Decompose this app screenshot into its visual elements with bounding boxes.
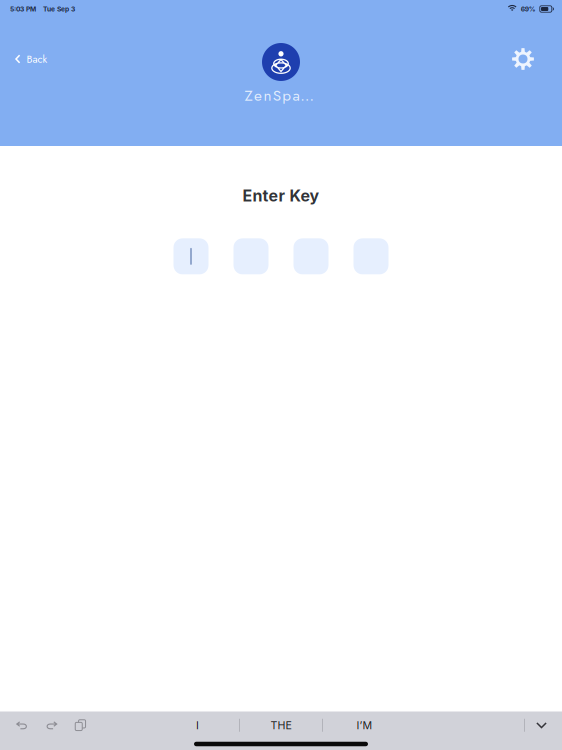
button[interactable]: I: [156, 714, 239, 737]
button[interactable]: Settings: [496, 39, 559, 79]
button[interactable]: Paste: [66, 714, 94, 737]
staticText: THE: [270, 719, 291, 732]
staticText: Enter Key: [242, 186, 319, 205]
button[interactable]: Back: [3, 42, 60, 76]
button[interactable]: Redo: [36, 715, 66, 735]
staticText: 69%: [521, 5, 536, 13]
staticText: 5:03 PM: [10, 5, 36, 13]
button[interactable]: I’M: [323, 714, 406, 737]
staticText: Back: [27, 51, 48, 67]
staticText: Tue Sep 3: [43, 5, 75, 13]
staticText: I: [196, 719, 199, 732]
button[interactable]: THE: [240, 714, 322, 737]
staticText: ZenSpace: [245, 84, 317, 107]
button[interactable]: Undo: [0, 715, 36, 735]
staticText: I’M: [356, 719, 372, 732]
button[interactable]: Hide keyboard: [525, 714, 562, 737]
